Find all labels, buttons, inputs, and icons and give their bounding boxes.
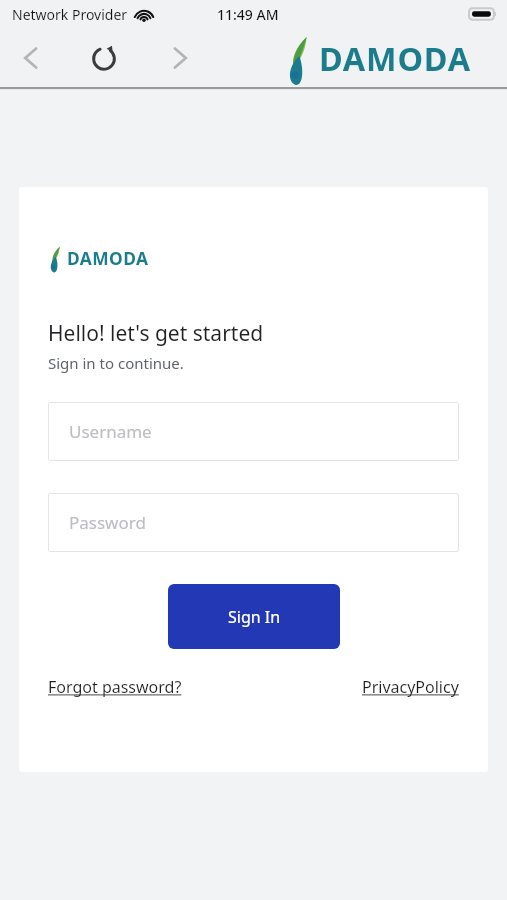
button[interactable]: Back [10, 37, 52, 79]
button[interactable]: PrivacyPolicy [362, 676, 459, 698]
staticText: Username [69, 420, 152, 443]
staticText: 11:49 AM [217, 5, 279, 24]
button[interactable]: Sign In [168, 584, 340, 649]
staticText: DAMODAR [319, 36, 490, 86]
staticText: Sign In [228, 606, 281, 628]
button[interactable]: Reload [83, 37, 125, 79]
staticText: Forgot password? [48, 676, 182, 698]
staticText: Network Provider [12, 5, 128, 24]
button[interactable]: Forgot password? [48, 676, 182, 698]
staticText: Sign in to continue. [48, 353, 184, 373]
staticText: Hello! let's get started [48, 319, 264, 348]
staticText: PrivacyPolicy [362, 676, 459, 698]
staticText: DAMODAR [67, 246, 158, 273]
button[interactable]: Forward [159, 37, 201, 79]
button[interactable]: Password [48, 493, 459, 552]
staticText: Password [69, 511, 146, 534]
button[interactable]: Username [48, 402, 459, 461]
